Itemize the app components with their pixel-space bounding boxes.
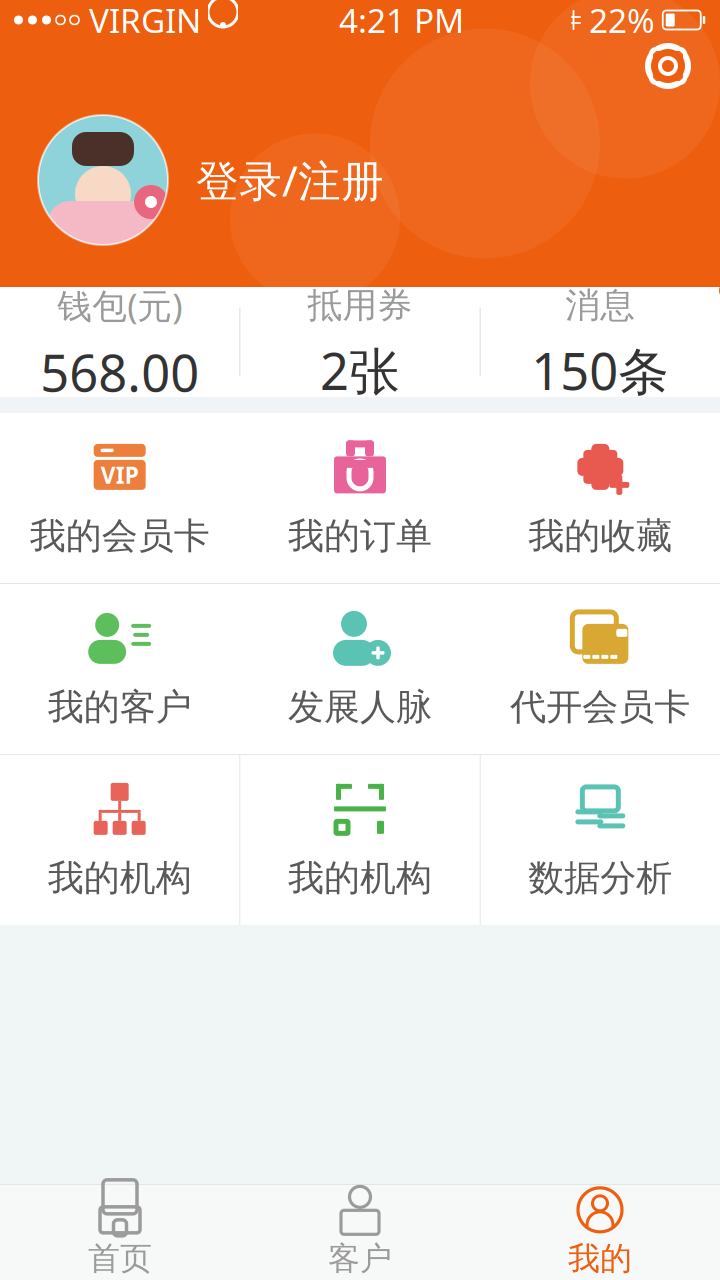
staticText: 22%	[589, 0, 655, 42]
staticText: 我的	[568, 1239, 632, 1278]
staticText: 我的机构	[48, 856, 192, 900]
staticText: 首页	[88, 1239, 152, 1278]
staticText: 2张	[320, 337, 400, 404]
staticText: 数据分析	[528, 856, 672, 900]
button[interactable]: 首页	[0, 1184, 240, 1280]
staticText: 4:21 PM	[339, 0, 464, 42]
staticText: 发展人脉	[288, 685, 432, 729]
button[interactable]: 代开会员卡	[481, 584, 720, 754]
staticText: 钱包(元)	[57, 282, 182, 328]
staticText: 代开会员卡	[510, 685, 690, 729]
button[interactable]: 我的	[480, 1184, 720, 1280]
staticText: VIRGIN	[89, 0, 201, 42]
staticText: 我的订单	[288, 514, 432, 558]
staticText: 我的客户	[48, 685, 192, 729]
staticText: 客户	[328, 1239, 392, 1278]
button[interactable]: 发展人脉	[240, 584, 480, 754]
button[interactable]: 我的机构	[240, 755, 480, 925]
staticText: 150条	[531, 337, 669, 404]
staticText: 我的会员卡	[30, 514, 210, 558]
button[interactable]: 消息	[481, 258, 720, 426]
button[interactable]: 我的客户	[0, 584, 239, 754]
staticText: 我的收藏	[528, 514, 672, 558]
button[interactable]: 数据分析	[481, 755, 720, 925]
button[interactable]: 钱包(元)	[0, 256, 239, 428]
button[interactable]: VIP	[0, 413, 239, 583]
button[interactable]: 我的机构	[0, 755, 239, 925]
button[interactable]: 登录/注册	[0, 92, 720, 262]
staticText: 消息	[565, 284, 635, 327]
button[interactable]: 我的订单	[240, 413, 480, 583]
staticText: 抵用券	[307, 284, 412, 327]
button[interactable]: Settings	[638, 36, 698, 96]
button[interactable]: 抵用券	[240, 258, 480, 426]
staticText: 568.00	[40, 338, 199, 406]
staticText: 登录/注册	[196, 152, 384, 208]
button[interactable]: 我的收藏	[481, 413, 720, 583]
button[interactable]: 客户	[240, 1184, 480, 1280]
staticText: VIP	[101, 460, 139, 490]
staticText: 我的机构	[288, 856, 432, 900]
